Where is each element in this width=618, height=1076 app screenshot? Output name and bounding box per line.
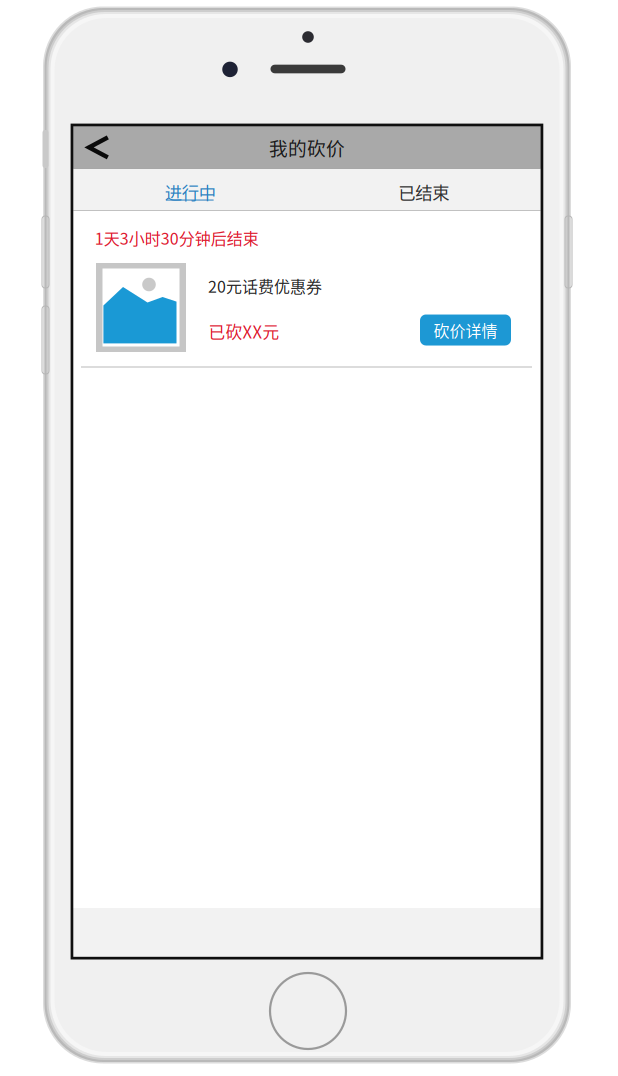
button[interactable]: 砍价详情 (420, 314, 511, 345)
button[interactable]: 已结束 (307, 168, 541, 211)
staticText: 已结束 (398, 179, 449, 205)
staticText: 我的砍价 (269, 134, 345, 161)
button[interactable]: Back (73, 126, 123, 168)
staticText: 1天3小时30分钟后结束 (95, 226, 259, 249)
staticText: 已砍XX元 (208, 319, 279, 343)
staticText: 进行中 (165, 179, 216, 205)
staticText: 20元话费优惠券 (208, 274, 322, 297)
button[interactable]: 进行中 (73, 168, 307, 211)
button[interactable]: 20元话费优惠券 商品图片 (96, 263, 186, 352)
staticText: 砍价详情 (433, 318, 497, 342)
